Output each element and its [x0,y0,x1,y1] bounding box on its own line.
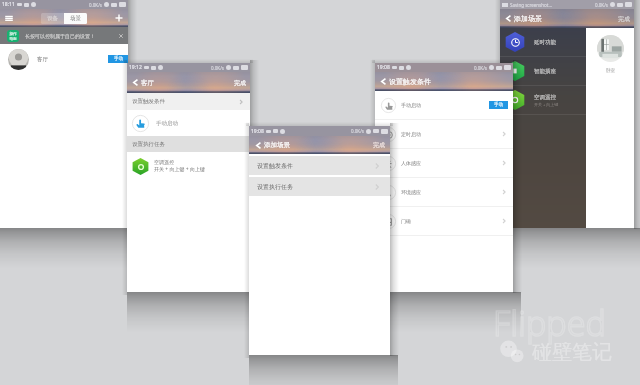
staticText: 长按可以控制属于自己的设置！ [25,33,95,39]
button[interactable]: 延时功能 [505,28,582,56]
button[interactable]: 人体感应 [381,149,508,177]
button[interactable]: Back [131,78,140,87]
button[interactable]: Close [117,32,125,40]
staticText: 空调遥控 [154,159,174,165]
staticText: 空调遥控 [534,94,556,101]
button[interactable]: Menu [4,13,14,23]
staticText: 设置触发条件 [389,77,431,86]
staticText: 添加场景 [514,14,542,23]
staticText: 0.0K/s [474,65,487,71]
button[interactable]: Back [504,14,513,23]
staticText: 设备 [47,15,58,22]
staticText: 开关 + 向上键 + 向上键 [154,166,205,173]
staticText: 开关 + 向上键 [534,102,559,107]
button[interactable]: Back [379,77,388,86]
button[interactable]: 完成 [618,15,630,23]
staticText: 设置触发条件 [132,98,165,105]
button[interactable]: 手动 [489,101,508,109]
staticText: 手动启动 [401,102,421,108]
button[interactable]: 完成 [373,141,385,149]
staticText: 设置执行任务 [257,183,293,191]
staticText: Flipped [493,300,606,346]
staticText: 客厅 [141,79,154,87]
staticText: 18:11 [2,1,15,8]
staticText: 操作 指南 [9,32,17,41]
staticText: 卧室 [606,68,615,74]
button[interactable]: Add [114,13,124,23]
button[interactable]: 环境感应 [381,178,508,206]
button[interactable]: 场景 [64,13,87,24]
staticText: 手动 [114,56,123,62]
button[interactable]: 智能插座 [505,57,582,85]
staticText: 环境感应 [401,189,421,195]
staticText: Saving screenshot… [510,2,552,8]
button[interactable]: 设置执行任务 [249,177,390,196]
button[interactable]: 空调遥控 [505,86,582,114]
staticText: 客厅 [37,56,48,63]
staticText: 手动 [494,102,503,108]
staticText: 19:08 [377,64,390,71]
staticText: 设置执行任务 [132,141,165,148]
button[interactable]: 设备 [41,13,64,24]
button[interactable]: 手动启动 [381,91,508,119]
staticText: 设置触发条件 [257,162,293,170]
button[interactable]: 手动 [108,55,128,63]
staticText: 19:12 [129,64,142,71]
button[interactable]: 设置触发条件 [249,156,390,175]
staticText: 0.0K/s [595,2,608,8]
button[interactable]: 空调遥控 [132,152,245,180]
staticText: 门磁 [401,218,411,224]
staticText: 碰壁笔记 [532,340,612,365]
staticText: 手动启动 [156,120,178,127]
button[interactable]: 定时启动 [381,120,508,148]
button[interactable]: 客厅 [8,44,128,74]
button[interactable]: 设置执行任务 [127,136,250,152]
button[interactable]: 完成 [234,79,246,87]
staticText: 场景 [70,15,81,22]
staticText: 0.0K/s [351,128,364,134]
staticText: 添加场景 [264,141,290,149]
staticText: 19:08 [251,128,264,135]
button[interactable]: 设置触发条件 [127,93,250,110]
button[interactable]: 手动启动 [132,110,245,136]
staticText: 人体感应 [401,160,421,166]
button[interactable]: 卧室 [586,28,634,228]
button[interactable]: Back [254,141,263,150]
button[interactable]: 门磁 [381,207,508,235]
staticText: 延时功能 [534,39,556,46]
staticText: 定时启动 [401,131,421,137]
staticText: 智能插座 [534,68,556,75]
staticText: 0.0K/s [89,2,102,8]
staticText: 0.0K/s [211,65,224,71]
